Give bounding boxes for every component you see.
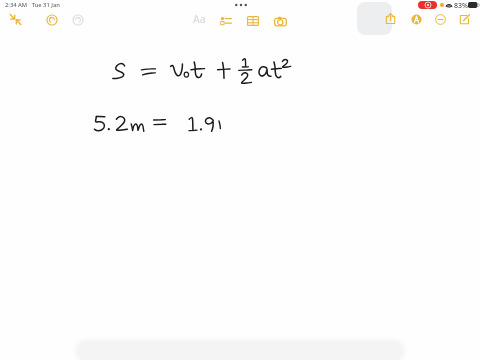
button[interactable]: Compose: [459, 14, 470, 25]
button[interactable]: Tool tray: [357, 2, 392, 35]
staticText: 2:34 AM Tue 31 Jan: [5, 1, 60, 9]
button[interactable]: Redo: [72, 14, 84, 26]
button[interactable]: Undo: [46, 14, 58, 26]
button[interactable]: Table: [247, 15, 259, 27]
button[interactable]: Aa: [191, 11, 208, 27]
staticText: Aa: [193, 12, 206, 26]
button[interactable]: Markup: [411, 14, 422, 25]
button[interactable]: Camera: [274, 15, 287, 28]
button[interactable]: Hide: [435, 14, 446, 25]
button[interactable]: Handwritten note canvas: [0, 40, 480, 360]
button[interactable]: Checklist: [220, 15, 232, 27]
button[interactable]: Collapse: [10, 14, 21, 25]
staticText: 83%: [454, 1, 468, 11]
button[interactable]: Multitasking controls: [229, 0, 253, 10]
button[interactable]: Share: [385, 13, 396, 24]
